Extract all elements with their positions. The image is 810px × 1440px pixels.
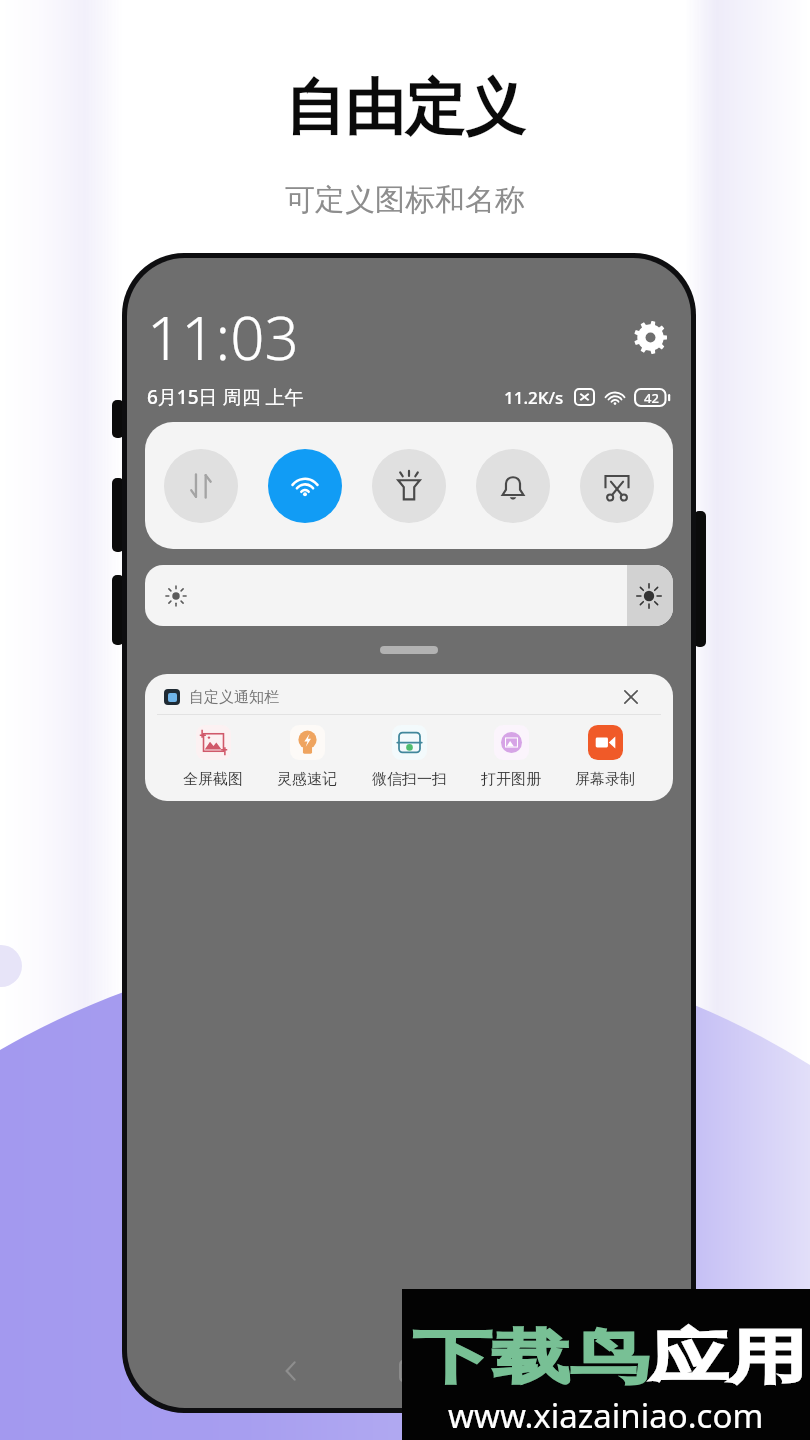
button[interactable]: Settings [634, 321, 667, 354]
button[interactable]: Mobile data [164, 449, 238, 523]
button[interactable]: 微信扫一扫 [368, 725, 451, 789]
staticText: 自定义通知栏 [189, 688, 279, 707]
button[interactable]: 灵感速记 [273, 725, 341, 789]
staticText: 微信扫一扫 [372, 770, 447, 789]
staticText: 可定义图标和名称 [285, 181, 525, 219]
staticText: 6月15日 周四 上午 [147, 384, 304, 410]
staticText: www.xiazainiao.com [448, 1393, 764, 1438]
button[interactable]: Screenshot [580, 449, 654, 523]
staticText: 应用 [649, 1321, 807, 1394]
button[interactable]: Recents [509, 1353, 545, 1389]
button[interactable]: Home [391, 1353, 427, 1389]
staticText: 全屏截图 [183, 770, 243, 789]
staticText: 11:03 [147, 296, 299, 378]
staticText: 下载鸟 [413, 1321, 649, 1394]
staticText: 42 [644, 389, 659, 407]
button[interactable]: WiFi [268, 449, 342, 523]
button[interactable]: 全屏截图 [179, 725, 247, 789]
button[interactable]: Brightness [145, 565, 673, 626]
button[interactable]: 屏幕录制 [571, 725, 639, 789]
button[interactable]: 打开图册 [477, 725, 545, 789]
staticText: 自由定义 [285, 70, 525, 146]
button[interactable]: Ring mode [476, 449, 550, 523]
button[interactable]: Back [273, 1353, 309, 1389]
button[interactable]: Flashlight [372, 449, 446, 523]
button[interactable]: Close [620, 686, 642, 708]
staticText: 灵感速记 [277, 770, 337, 789]
staticText: 11.2K/s [504, 386, 564, 409]
staticText: 屏幕录制 [575, 770, 635, 789]
staticText: 打开图册 [481, 770, 541, 789]
